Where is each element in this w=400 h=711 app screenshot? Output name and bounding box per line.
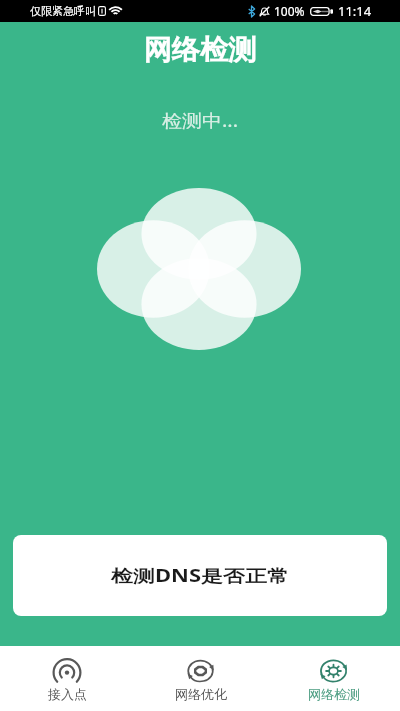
other: 网络优化 [187,660,214,682]
staticText: 网络检测 [144,33,256,67]
button[interactable]: 接入点 [0,646,134,711]
staticText: 100% [274,3,305,19]
staticText: 接入点 [48,686,87,702]
button[interactable]: 检测DNS是否正常 [13,535,387,616]
button[interactable]: 网络检测 [267,646,400,711]
staticText: 检测中... [162,109,239,132]
other: 接入点 [53,659,81,683]
staticText: 网络优化 [175,686,227,702]
staticText: 网络检测 [308,686,360,702]
staticText: 检测DNS是否正常 [111,564,289,587]
button[interactable]: 网络优化 [134,646,267,711]
staticText: 仅限紧急呼叫 [30,4,96,18]
other: 网络检测 [320,660,347,682]
staticText: 11:14 [338,2,372,20]
